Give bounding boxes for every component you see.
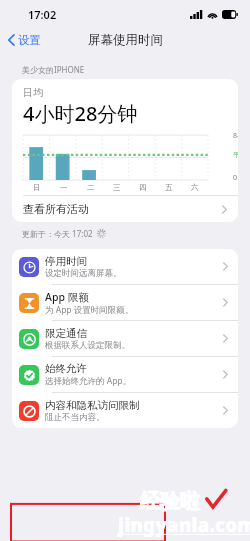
staticText: 平均 [233, 150, 238, 159]
button[interactable]: App 限额 [12, 285, 238, 320]
staticText: 经验啦 [140, 489, 200, 514]
button[interactable]: 内容和隐私访问限制 [12, 393, 238, 428]
staticText: 根据联系人设定限制。 [45, 340, 130, 351]
staticText: 美少女的IPHONE [22, 64, 85, 75]
staticText: 阻止不当内容。 [45, 412, 105, 423]
staticText: 四 [139, 183, 147, 192]
staticText: 三 [113, 183, 121, 192]
staticText: 17:02 [28, 7, 57, 22]
staticText: 五 [165, 183, 173, 192]
staticText: 查看所有活动 [23, 202, 89, 216]
staticText: 设置 [18, 33, 41, 47]
staticText: 日 [33, 183, 41, 192]
button[interactable]: 查看所有活动 [12, 196, 238, 222]
staticText: 始终允许 [45, 362, 87, 375]
staticText: 选择始终允许的 App。 [45, 375, 132, 387]
staticText: 日均 [23, 86, 43, 99]
button[interactable]: 停用时间 [12, 249, 238, 284]
staticText: 设定时间远离屏幕。 [45, 268, 122, 279]
staticText: 停用时间 [45, 255, 87, 268]
staticText: 内容和隐私访问限制 [45, 399, 140, 412]
staticText: 一 [60, 183, 68, 192]
staticText: jingyanla.com [118, 512, 250, 538]
staticText: 限定通信 [45, 327, 87, 340]
other: Check mark [205, 489, 227, 511]
staticText: 二 [87, 183, 95, 192]
staticText: 0 [233, 173, 238, 183]
staticText: 更新于：今天 17:02 [22, 228, 93, 239]
button[interactable]: 始终允许 [12, 357, 238, 392]
staticText: 4小时28分钟 [23, 100, 138, 127]
staticText: App 限额 [45, 290, 89, 304]
staticText: 六 [191, 183, 199, 192]
staticText: 屏幕使用时间 [88, 32, 163, 48]
button[interactable]: 设置 [0, 30, 49, 50]
staticText: 8小时 [233, 131, 238, 141]
button[interactable]: 限定通信 [12, 321, 238, 356]
staticText: 为 App 设置时间限额。 [45, 304, 134, 316]
